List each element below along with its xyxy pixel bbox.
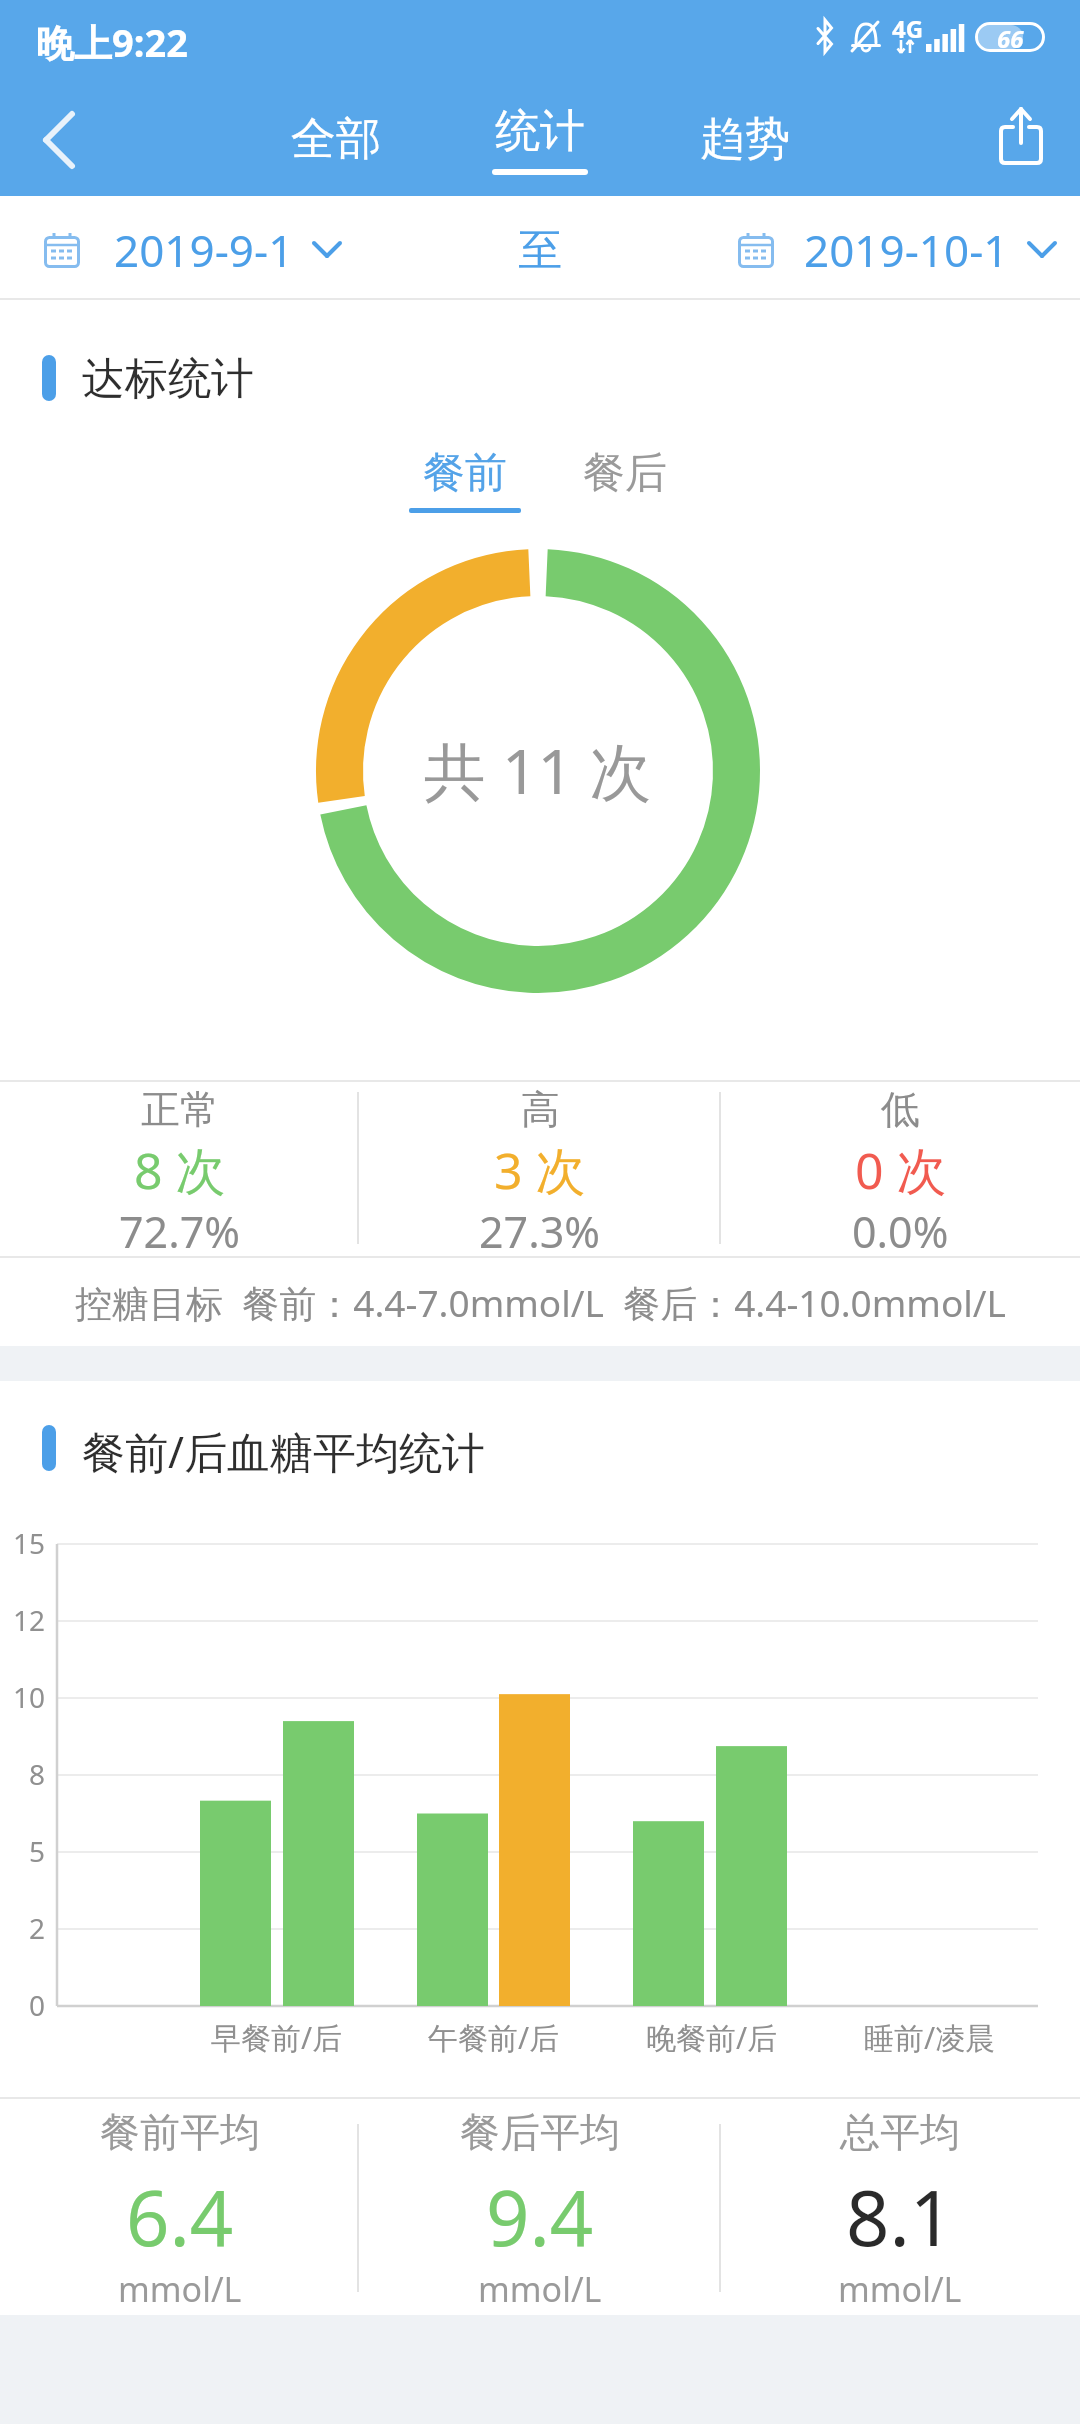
button[interactable] (985, 98, 1057, 174)
staticText: 10 (13, 1678, 46, 1716)
staticText: 8 (29, 1755, 46, 1793)
staticText: 餐前/后血糖平均统计 (82, 1422, 485, 1481)
staticText: 餐后 (583, 447, 667, 500)
button[interactable]: 餐后平均 (360, 2099, 720, 2315)
button[interactable]: 统计 (480, 100, 600, 178)
staticText: 66 (997, 22, 1024, 52)
button[interactable]: 总平均 (720, 2099, 1080, 2315)
staticText: 共 11 次 (424, 728, 652, 813)
button[interactable]: 正常 (0, 1082, 360, 1254)
staticText: mmol/L (478, 2266, 602, 2312)
staticText: 12 (13, 1601, 46, 1639)
staticText: 高 (521, 1085, 560, 1134)
staticText: 27.3% (479, 1202, 601, 1252)
staticText: 晚上9:22 (36, 16, 188, 68)
staticText: 2019-9-1 (114, 220, 294, 280)
button[interactable]: 低 (720, 1082, 1080, 1254)
staticText: 8 次 (134, 1136, 226, 1202)
staticText: 早餐前/后 (211, 2017, 343, 2058)
staticText: 餐后平均 (460, 2107, 620, 2157)
staticText: 0 (29, 1986, 46, 2024)
staticText: 0.0% (852, 1202, 949, 1252)
button[interactable]: 餐前 (400, 440, 530, 520)
staticText: mmol/L (118, 2266, 242, 2312)
staticText: 午餐前/后 (428, 2017, 560, 2058)
staticText: 正常 (141, 1085, 219, 1134)
staticText: 低 (881, 1085, 920, 1134)
staticText: 0 次 (855, 1136, 947, 1202)
staticText: 9.4 (486, 2165, 594, 2265)
button[interactable]: 2019-10-1 (738, 205, 1060, 295)
staticText: 控糖目标 餐前：4.4-7.0mmol/L 餐后：4.4-10.0mmol/L (75, 1277, 1006, 1328)
button[interactable]: 餐前平均 (0, 2099, 360, 2315)
staticText: 统计 (495, 103, 585, 160)
staticText: 趋势 (700, 111, 790, 168)
staticText: 睡前/凌晨 (864, 2017, 996, 2058)
staticText: 餐前平均 (100, 2107, 260, 2157)
staticText: 总平均 (840, 2107, 960, 2157)
button[interactable]: 2019-9-1 (44, 205, 444, 295)
staticText: 餐前 (423, 447, 507, 500)
staticText: 晚餐前/后 (646, 2017, 778, 2058)
button[interactable]: 全部 (276, 100, 396, 178)
button[interactable] (20, 100, 100, 180)
button[interactable]: 趋势 (685, 100, 805, 178)
staticText: 达标统计 (82, 352, 254, 406)
staticText: 6.4 (126, 2165, 234, 2265)
staticText: 15 (13, 1524, 46, 1562)
staticText: 3 次 (494, 1136, 586, 1202)
button[interactable]: 餐后 (560, 440, 690, 520)
button[interactable]: 高 (360, 1082, 720, 1254)
staticText: 2 (29, 1909, 46, 1947)
staticText: 4G (892, 12, 924, 40)
staticText: 全部 (291, 111, 381, 168)
staticText: mmol/L (838, 2266, 962, 2312)
staticText: 5 (29, 1832, 46, 1870)
staticText: 8.1 (846, 2165, 954, 2265)
staticText: 2019-10-1 (804, 220, 1009, 280)
staticText: 72.7% (119, 1202, 241, 1252)
staticText: 至 (518, 223, 562, 278)
